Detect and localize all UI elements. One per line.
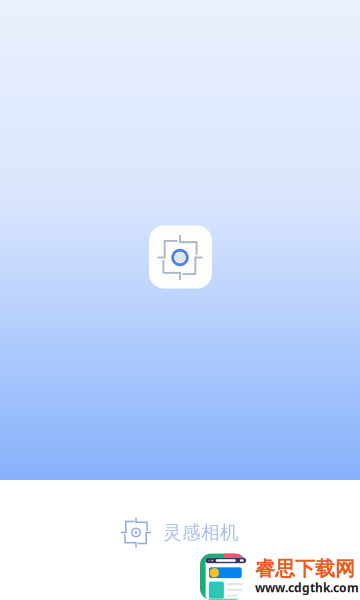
staticText: 灵感相机: [163, 521, 239, 544]
staticText: www.cdgthk.com: [255, 580, 359, 595]
staticText: 睿思下载网: [255, 557, 355, 581]
